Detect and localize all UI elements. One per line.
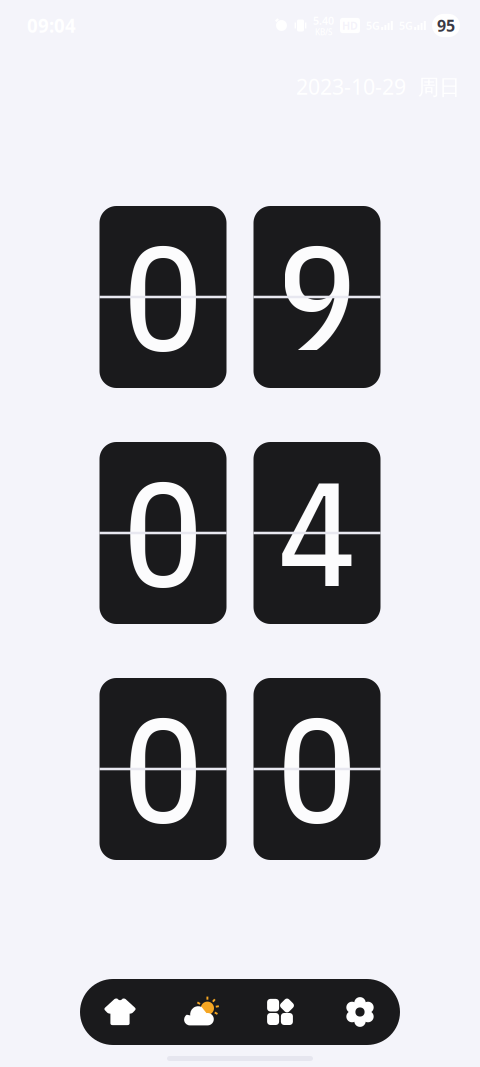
staticText: KB/S — [315, 27, 332, 37]
staticText: 09:04 — [27, 13, 76, 38]
staticText: 4 — [277, 436, 356, 626]
staticText: 95 — [437, 15, 455, 36]
staticText: 9 — [277, 200, 356, 390]
staticText: 0 — [123, 200, 202, 390]
button[interactable]: Widgets — [240, 979, 320, 1045]
staticText: 0 — [123, 672, 202, 862]
button[interactable]: Settings — [320, 979, 400, 1045]
button[interactable]: Outfits — [80, 979, 160, 1045]
staticText: 5G — [399, 18, 413, 33]
staticText: 5G — [366, 18, 380, 33]
staticText: 0 — [123, 436, 202, 626]
staticText: HD — [342, 18, 358, 33]
button[interactable]: Weather — [160, 979, 240, 1045]
staticText: 2023-10-29 周日 — [296, 72, 460, 101]
staticText: 0 — [277, 672, 356, 862]
staticText: 5.40 — [313, 14, 334, 28]
